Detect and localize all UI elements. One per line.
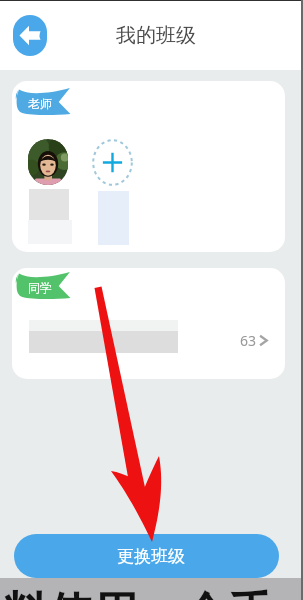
button[interactable]: Back — [13, 15, 47, 56]
button[interactable]: 更换班级 — [14, 534, 279, 578]
staticText: 同学 — [28, 280, 52, 295]
button[interactable]: Teacher avatar — [28, 139, 68, 185]
button[interactable]: 63 — [12, 268, 285, 379]
staticText: 老师 — [28, 96, 52, 111]
staticText: 我的班级 — [116, 23, 196, 48]
staticText: 料使用一个手 — [3, 586, 273, 600]
staticText: 更换班级 — [117, 546, 185, 567]
staticText: 63 — [240, 331, 257, 350]
button[interactable]: Add teacher — [92, 139, 133, 186]
